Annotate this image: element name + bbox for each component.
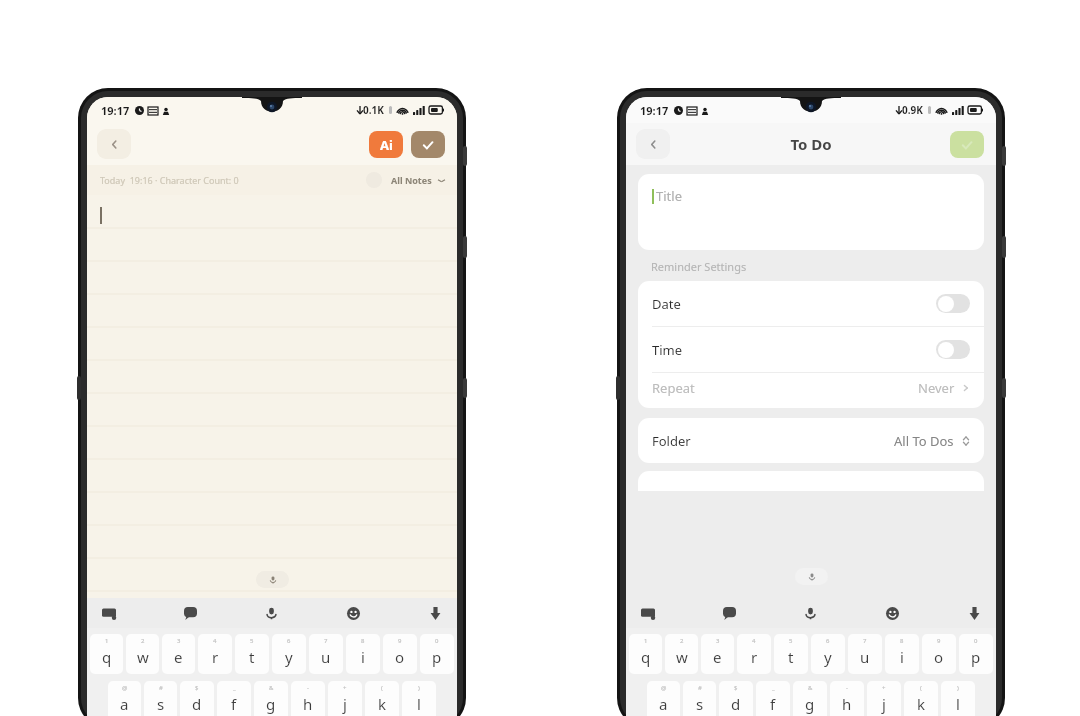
button[interactable]: Voice typing bbox=[263, 605, 279, 621]
button[interactable]: ) bbox=[941, 681, 975, 716]
button[interactable]: 6 bbox=[272, 634, 306, 674]
button[interactable]: 9 bbox=[922, 634, 956, 674]
staticText: Title bbox=[656, 187, 682, 205]
button[interactable]: 0 bbox=[420, 634, 454, 674]
staticText: i bbox=[900, 647, 904, 667]
button[interactable]: Title bbox=[638, 174, 984, 250]
staticText: 9 bbox=[398, 637, 402, 645]
button[interactable]: Keyboard settings bbox=[640, 605, 656, 621]
button[interactable]: 5 bbox=[774, 634, 808, 674]
button[interactable]: + bbox=[867, 681, 901, 716]
button[interactable]: - bbox=[291, 681, 325, 716]
button[interactable]: Hide keyboard bbox=[427, 605, 443, 621]
staticText: 0.9K bbox=[902, 103, 923, 117]
button[interactable]: 2 bbox=[126, 634, 159, 674]
button[interactable]: Emoji bbox=[345, 605, 361, 621]
button[interactable]: ( bbox=[365, 681, 399, 716]
button[interactable]: Date bbox=[638, 281, 984, 326]
staticText: q bbox=[102, 647, 112, 667]
button[interactable]: 6 bbox=[811, 634, 845, 674]
staticText: & bbox=[269, 684, 274, 692]
button[interactable]: & bbox=[254, 681, 288, 716]
staticText: 0 bbox=[974, 637, 978, 645]
button[interactable]: 1 bbox=[90, 634, 123, 674]
button[interactable]: 3 bbox=[701, 634, 734, 674]
button[interactable]: 1 bbox=[629, 634, 662, 674]
button[interactable]: @ bbox=[108, 681, 141, 716]
button[interactable]: 8 bbox=[885, 634, 919, 674]
button[interactable]: 0 bbox=[959, 634, 993, 674]
staticText: 7 bbox=[324, 637, 328, 645]
staticText: k bbox=[917, 694, 926, 714]
button[interactable]: Back bbox=[97, 129, 131, 159]
button[interactable]: Save bbox=[411, 131, 445, 158]
button[interactable]: 7 bbox=[309, 634, 343, 674]
button[interactable]: Keyboard settings bbox=[101, 605, 117, 621]
button[interactable]: # bbox=[144, 681, 177, 716]
staticText: 6 bbox=[287, 637, 291, 645]
staticText: ) bbox=[418, 684, 420, 692]
staticText: + bbox=[343, 684, 347, 692]
button[interactable]: _ bbox=[756, 681, 790, 716]
staticText: i bbox=[361, 647, 365, 667]
staticText: j bbox=[882, 694, 886, 714]
staticText: # bbox=[698, 684, 702, 692]
button[interactable]: _ bbox=[217, 681, 251, 716]
button[interactable]: 4 bbox=[198, 634, 232, 674]
staticText: q bbox=[641, 647, 651, 667]
staticText: All Notes bbox=[391, 174, 432, 186]
button[interactable]: 9 bbox=[383, 634, 417, 674]
button[interactable]: Folder bbox=[638, 418, 984, 463]
staticText: o bbox=[395, 647, 405, 667]
staticText: - bbox=[307, 684, 309, 692]
button[interactable]: Save bbox=[950, 131, 984, 158]
staticText: ( bbox=[381, 684, 383, 692]
button[interactable]: @ bbox=[647, 681, 680, 716]
button[interactable]: Emoji bbox=[884, 605, 900, 621]
staticText: 5 bbox=[250, 637, 254, 645]
button[interactable]: + bbox=[328, 681, 362, 716]
button[interactable]: 4 bbox=[737, 634, 771, 674]
staticText: r bbox=[751, 647, 758, 667]
button[interactable]: Messages bbox=[721, 605, 737, 621]
button[interactable]: 5 bbox=[235, 634, 269, 674]
button[interactable]: Hide keyboard bbox=[966, 605, 982, 621]
staticText: j bbox=[343, 694, 347, 714]
button[interactable]: $ bbox=[180, 681, 214, 716]
staticText: s bbox=[157, 694, 165, 714]
button[interactable]: Voice input bbox=[256, 571, 289, 588]
staticText: 4 bbox=[752, 637, 756, 645]
button[interactable]: & bbox=[793, 681, 827, 716]
staticText: Reminder Settings bbox=[651, 259, 747, 274]
staticText: 8 bbox=[900, 637, 904, 645]
staticText: 19:17 bbox=[101, 103, 130, 118]
staticText: ) bbox=[957, 684, 959, 692]
button[interactable]: 3 bbox=[162, 634, 195, 674]
button[interactable]: Messages bbox=[182, 605, 198, 621]
staticText: Date bbox=[652, 295, 681, 313]
button[interactable]: ( bbox=[904, 681, 938, 716]
button[interactable]: - bbox=[830, 681, 864, 716]
button[interactable]: All Notes bbox=[391, 174, 445, 186]
staticText: 2 bbox=[680, 637, 684, 645]
button[interactable]: Back bbox=[636, 129, 670, 159]
button[interactable]: ) bbox=[402, 681, 436, 716]
staticText: 4 bbox=[213, 637, 217, 645]
button[interactable]: 7 bbox=[848, 634, 882, 674]
button[interactable]: 8 bbox=[346, 634, 380, 674]
staticText: 1 bbox=[105, 637, 109, 645]
button[interactable]: Ai bbox=[369, 131, 403, 158]
staticText: d bbox=[731, 694, 741, 714]
button[interactable]: Voice typing bbox=[802, 605, 818, 621]
staticText: 8 bbox=[361, 637, 365, 645]
button[interactable]: # bbox=[683, 681, 716, 716]
button[interactable]: 2 bbox=[665, 634, 698, 674]
staticText: f bbox=[770, 694, 776, 714]
button[interactable]: Time bbox=[638, 327, 984, 372]
button[interactable]: Voice input bbox=[795, 568, 828, 585]
staticText: Ai bbox=[380, 136, 393, 154]
button[interactable]: $ bbox=[719, 681, 753, 716]
button[interactable]: Repeat bbox=[638, 373, 984, 403]
